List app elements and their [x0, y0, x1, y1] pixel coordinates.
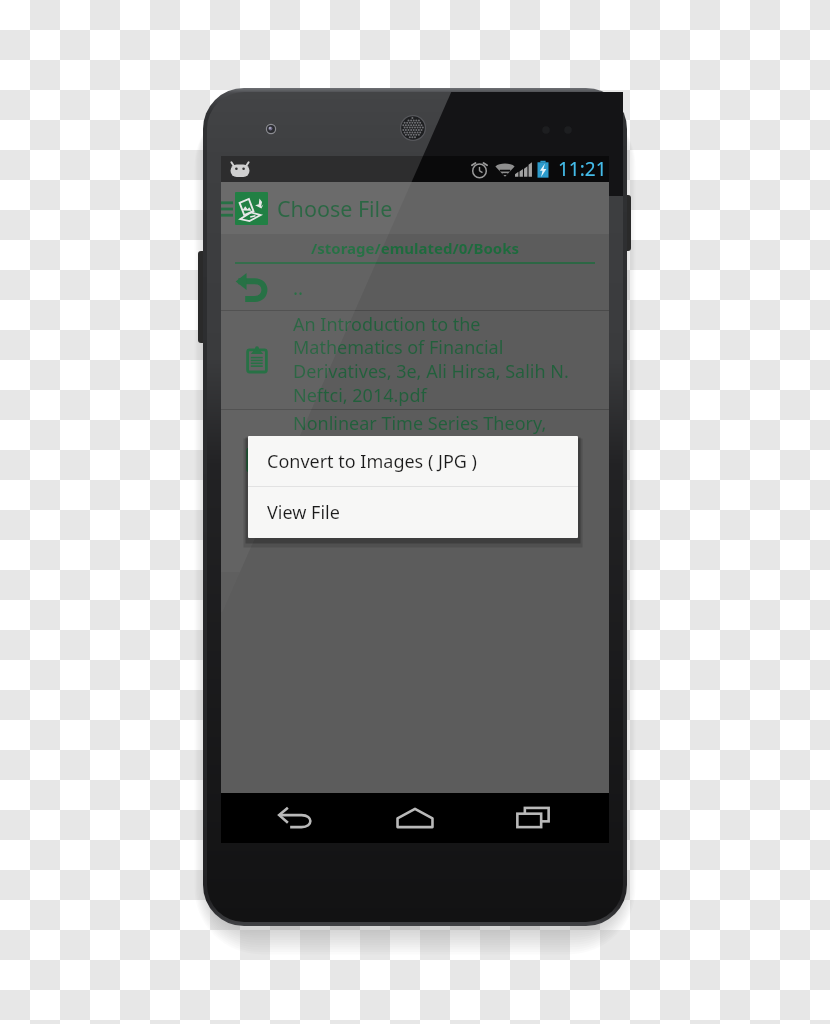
button[interactable]: Back — [255, 793, 339, 843]
button[interactable]: Nonlinear Time Series Theory, Methods an… — [221, 410, 609, 508]
staticText: /storage/emulated/0/Books — [311, 238, 520, 258]
other: App icon — [235, 192, 268, 225]
button[interactable]: An Introduction to the Mathematics of Fi… — [221, 311, 609, 409]
button[interactable]: View File — [248, 487, 578, 538]
button[interactable]: Home — [373, 793, 457, 843]
staticText: Convert to Images ( JPG ) — [267, 449, 477, 474]
staticText: Choose File — [277, 194, 393, 223]
staticText: 11:21 — [558, 156, 607, 182]
button[interactable]: .. — [221, 265, 609, 310]
staticText: Nonlinear Time Series Theory, Methods an… — [293, 411, 593, 507]
button[interactable]: Recent apps — [491, 793, 575, 843]
button[interactable]: Convert to Images ( JPG ) — [248, 436, 578, 486]
staticText: View File — [267, 500, 340, 525]
staticText: An Introduction to the Mathematics of Fi… — [293, 312, 593, 408]
button[interactable]: App icon — [221, 182, 609, 234]
staticText: .. — [293, 275, 304, 301]
